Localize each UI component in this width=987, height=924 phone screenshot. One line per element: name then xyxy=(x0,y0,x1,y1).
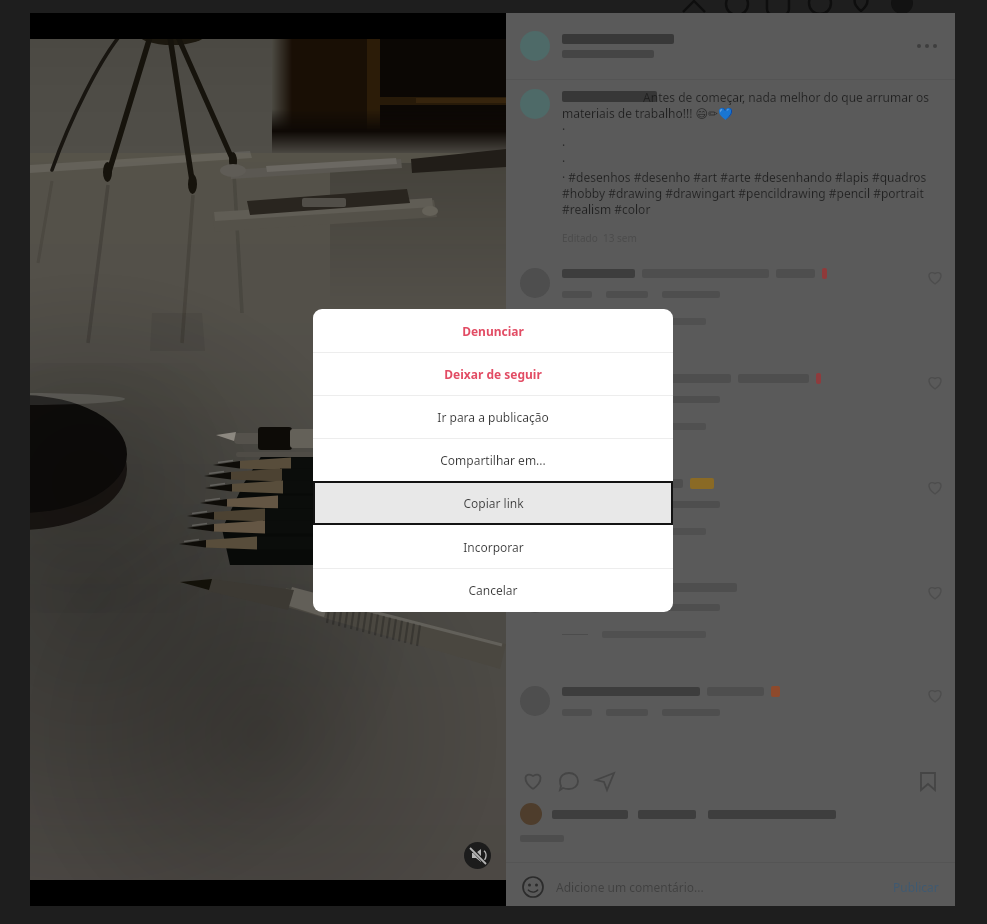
staticText: · xyxy=(562,153,566,169)
button[interactable]: hpendurasart xyxy=(562,91,657,102)
button[interactable]: Profile picture xyxy=(520,478,550,508)
button[interactable]: Like comment xyxy=(925,373,945,393)
button[interactable]: Like comment xyxy=(925,686,945,706)
button[interactable]: Profile picture xyxy=(520,686,550,716)
button[interactable]: Emoji xyxy=(520,874,546,900)
button[interactable]: Share xyxy=(590,766,620,796)
button[interactable]: Like xyxy=(518,766,548,796)
staticText: Incorporar xyxy=(463,539,524,555)
staticText: Copiar link xyxy=(463,495,524,511)
button[interactable]: Unmute xyxy=(464,842,491,869)
button[interactable]: Incorporar xyxy=(313,525,673,568)
button[interactable]: Save xyxy=(913,766,943,796)
staticText: Deixar de seguir xyxy=(444,366,542,382)
button[interactable]: Cancelar xyxy=(313,569,673,611)
staticText: Compartilhar em... xyxy=(440,452,546,468)
button[interactable]: Profile picture xyxy=(520,373,550,403)
button[interactable]: Compartilhar em... xyxy=(313,439,673,481)
button[interactable]: Like comment xyxy=(925,268,945,288)
staticText: Editado 13 sem xyxy=(562,231,637,245)
staticText: Adicione um comentário... xyxy=(556,879,704,895)
button[interactable]: Ir para a publicação xyxy=(313,396,673,438)
button[interactable]: Like comment xyxy=(925,583,945,603)
button[interactable]: Like comment xyxy=(925,478,945,498)
staticText: · #desenhos #desenho #art #arte #desenha… xyxy=(562,169,927,185)
button[interactable]: More options xyxy=(913,32,941,60)
staticText: Ir para a publicação xyxy=(437,409,549,425)
button[interactable]: Profile picture xyxy=(520,268,550,298)
staticText: #realism #color xyxy=(562,201,651,217)
button[interactable]: Publicar xyxy=(891,877,941,897)
button[interactable]: Profile picture xyxy=(520,583,550,613)
staticText: #hobby #drawing #drawingart #pencildrawi… xyxy=(562,185,924,201)
staticText: · xyxy=(562,121,566,137)
staticText: · xyxy=(562,137,566,153)
button[interactable]: Deixar de seguir xyxy=(313,353,673,395)
button[interactable]: Profile picture xyxy=(520,89,550,119)
staticText: Denunciar xyxy=(462,323,524,339)
button[interactable]: Denunciar xyxy=(313,309,673,352)
button[interactable]: Comment xyxy=(554,766,584,796)
button[interactable]: Copiar link xyxy=(313,481,673,525)
staticText: materiais de trabalho!!! 😄✏️💙 xyxy=(562,105,734,121)
staticText: Cancelar xyxy=(468,582,518,598)
button[interactable]: Profile picture xyxy=(520,31,550,61)
staticText: Antes de começar, nada melhor do que arr… xyxy=(562,89,930,105)
staticText: Publicar xyxy=(893,879,939,895)
button[interactable]: Video xyxy=(30,13,506,906)
